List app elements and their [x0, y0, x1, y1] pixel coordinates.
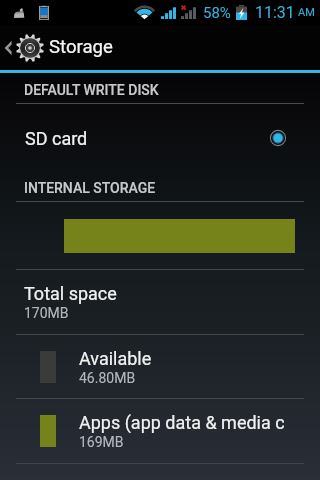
staticText: AM: [298, 6, 315, 19]
button[interactable]: SD card: [0, 104, 320, 174]
staticText: 170MB: [24, 305, 69, 321]
button[interactable]: Available: [0, 335, 320, 398]
staticText: 58%: [203, 4, 231, 22]
button[interactable]: Navigate up: [0, 25, 320, 70]
staticText: Total space: [24, 283, 117, 304]
staticText: SD card: [25, 128, 88, 149]
other: Navigate up: [4, 40, 12, 56]
button[interactable]: Total space: [0, 270, 320, 334]
staticText: 11:31: [255, 3, 295, 22]
staticText: 46.80MB: [79, 370, 136, 386]
staticText: INTERNAL STORAGE: [24, 180, 156, 196]
staticText: Apps (app data & media content): [79, 412, 284, 433]
staticText: Available: [79, 348, 152, 369]
button[interactable]: Apps (app data & media content): [0, 399, 320, 463]
staticText: 169MB: [79, 434, 124, 450]
staticText: DEFAULT WRITE DISK: [24, 82, 159, 98]
staticText: Storage: [49, 36, 113, 58]
